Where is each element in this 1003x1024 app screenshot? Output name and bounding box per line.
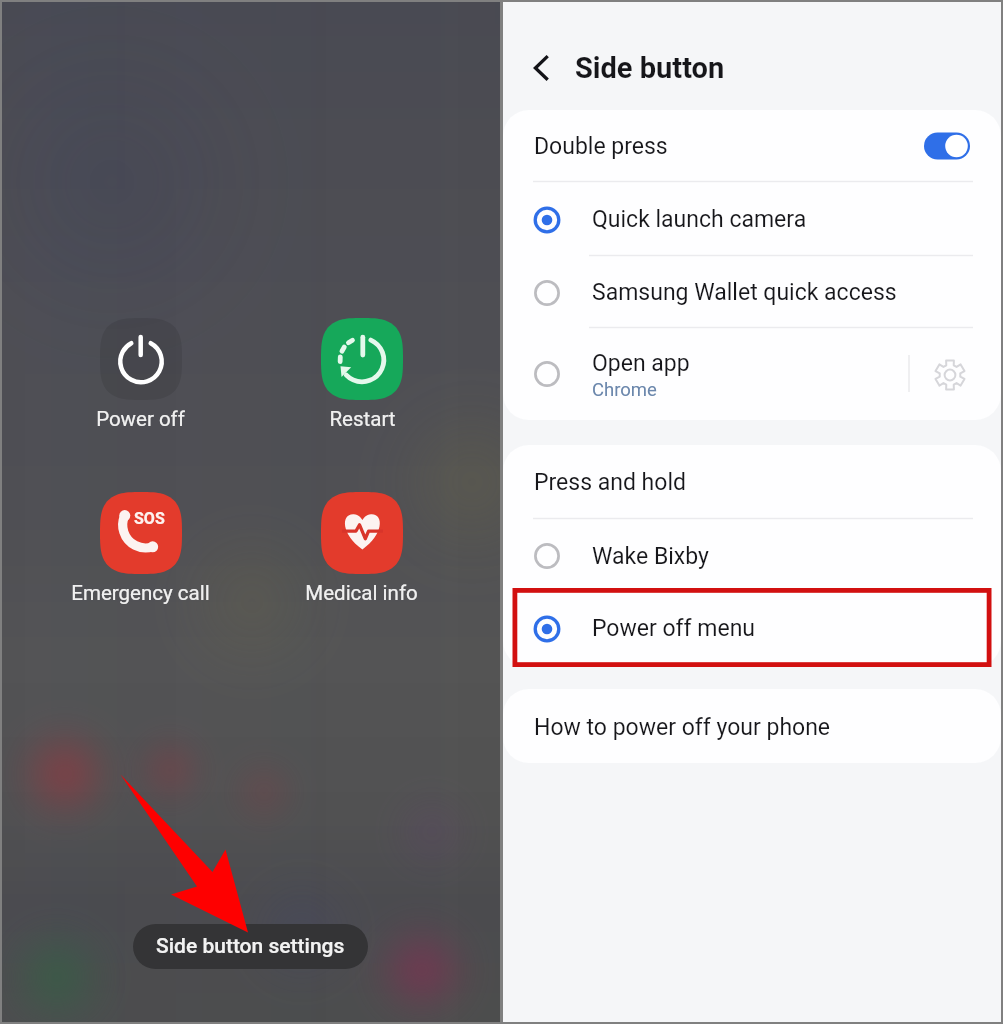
staticText: Open app [592, 350, 690, 377]
button[interactable]: How to power off your phone [503, 689, 1001, 763]
staticText: Wake Bixby [592, 543, 709, 570]
staticText: Emergency call [71, 581, 210, 605]
staticText: Quick launch camera [592, 206, 807, 233]
button[interactable]: Back [519, 45, 565, 91]
staticText: Chrome [592, 379, 657, 401]
staticText: Double press [534, 133, 668, 160]
button[interactable]: Power off [50, 318, 230, 434]
staticText: Side button [575, 51, 725, 85]
button[interactable]: Open app, Chrome [503, 328, 1001, 420]
staticText: SOS [134, 509, 165, 528]
button[interactable]: Samsung Wallet quick access [503, 256, 1001, 328]
button[interactable]: Quick launch camera [503, 182, 1001, 256]
button[interactable]: App settings [927, 352, 972, 397]
staticText: Side button settings [156, 934, 345, 959]
button[interactable]: Double press [503, 110, 1001, 182]
staticText: Power off [96, 407, 185, 431]
button[interactable]: Wake Bixby [503, 519, 1001, 592]
button[interactable]: Restart [272, 318, 452, 434]
staticText: Power off menu [592, 615, 756, 642]
staticText: How to power off your phone [534, 714, 831, 741]
button[interactable]: Double press toggle [921, 130, 973, 162]
staticText: Samsung Wallet quick access [592, 279, 897, 306]
button[interactable]: SOS [50, 492, 230, 608]
staticText: Medical info [305, 581, 418, 605]
staticText: Press and hold [534, 469, 686, 496]
button[interactable]: Side button settings [133, 924, 368, 969]
button[interactable]: Medical info [271, 492, 451, 608]
button[interactable]: Power off menu [503, 592, 1001, 667]
staticText: Restart [329, 407, 396, 431]
